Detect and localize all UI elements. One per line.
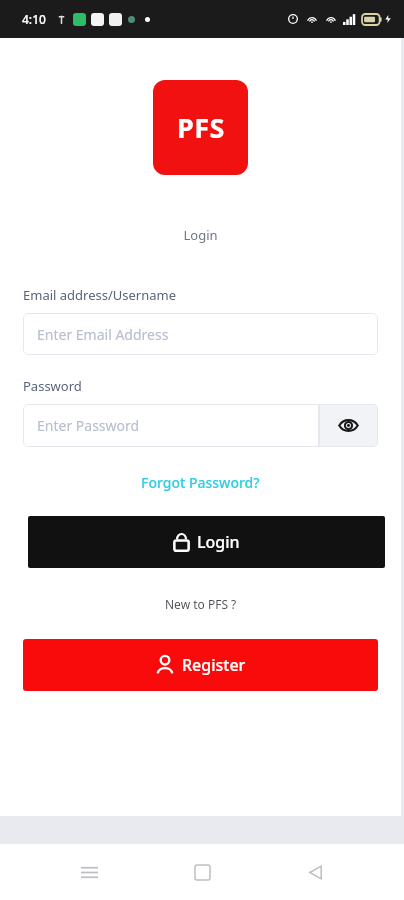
- staticText: Email address/Username: [23, 286, 177, 304]
- staticText: Forgot Password?: [141, 473, 260, 492]
- button[interactable]: Login: [28, 516, 385, 568]
- staticText: New to PFS ?: [165, 596, 237, 612]
- staticText: PFS: [177, 109, 225, 146]
- button[interactable]: Back: [291, 848, 339, 896]
- staticText: Password: [23, 377, 82, 395]
- button[interactable]: Recent apps: [65, 848, 113, 896]
- staticText: 4:10: [22, 11, 46, 27]
- button[interactable]: Enter Email Address: [23, 313, 378, 355]
- button[interactable]: Show password: [319, 404, 378, 447]
- button[interactable]: Home: [178, 848, 226, 896]
- button[interactable]: Forgot Password?: [135, 471, 266, 494]
- staticText: Enter Password: [37, 416, 140, 435]
- staticText: Register: [182, 654, 246, 676]
- button[interactable]: Register: [23, 639, 378, 691]
- staticText: Enter Email Address: [37, 325, 169, 344]
- staticText: Login: [183, 226, 218, 244]
- staticText: Login: [197, 531, 240, 553]
- button[interactable]: Enter Password: [23, 404, 319, 447]
